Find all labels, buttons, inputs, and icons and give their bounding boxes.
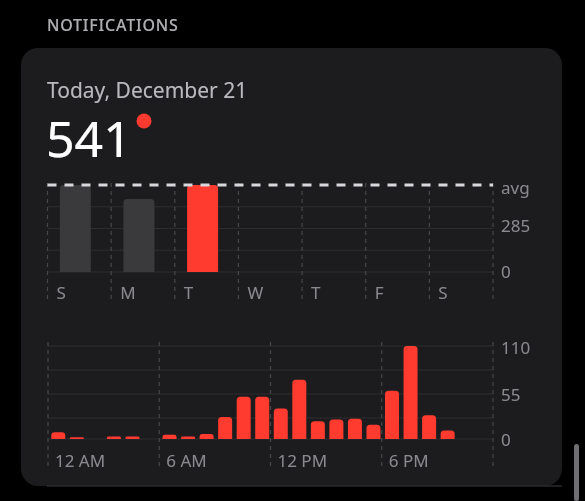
button[interactable]: Steps notification chart [0,0,585,501]
